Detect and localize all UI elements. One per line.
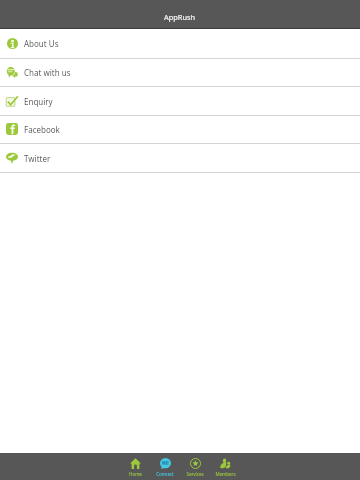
button[interactable]: Facebook [0, 115, 360, 144]
staticText: Services [186, 471, 204, 477]
staticText: Members [215, 471, 236, 477]
button[interactable]: Services [180, 453, 210, 480]
staticText: Chat with us [24, 67, 71, 78]
button[interactable]: Members [210, 453, 240, 480]
staticText: Twitter [24, 153, 51, 164]
staticText: AppRush [164, 12, 196, 22]
button[interactable]: AppRush [0, 0, 360, 28]
staticText: Home [129, 471, 142, 477]
button[interactable]: About Us [0, 29, 360, 59]
staticText: About Us [24, 38, 59, 49]
button[interactable]: Enquiry [0, 87, 360, 115]
staticText: Enquiry [24, 96, 53, 107]
button[interactable]: Connect [150, 453, 180, 480]
button[interactable]: Chat with us [0, 59, 360, 87]
staticText: Connect [156, 471, 174, 477]
staticText: Facebook [24, 124, 60, 135]
button[interactable]: Twitter [0, 144, 360, 173]
button[interactable]: Home [120, 453, 150, 480]
